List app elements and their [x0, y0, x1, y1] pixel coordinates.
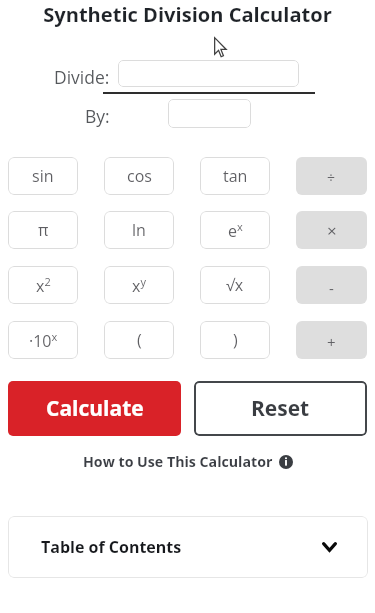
- button[interactable]: Table of Contents: [8, 516, 368, 578]
- button[interactable]: Reset: [194, 381, 367, 436]
- staticText: Divide:: [54, 65, 110, 89]
- staticText: π: [38, 219, 49, 241]
- button[interactable]: sin: [8, 157, 78, 195]
- button[interactable]: cos: [104, 157, 174, 195]
- staticText: Calculate: [46, 394, 144, 423]
- staticText: Table of Contents: [41, 536, 182, 558]
- button[interactable]: Dividend input: [118, 60, 299, 87]
- button[interactable]: Subtract: [296, 266, 367, 304]
- button[interactable]: π: [8, 211, 78, 249]
- button[interactable]: tan: [200, 157, 270, 195]
- staticText: cos: [127, 165, 152, 187]
- staticText: ·10x: [29, 329, 58, 351]
- staticText: tan: [223, 165, 248, 187]
- staticText: (: [137, 329, 142, 351]
- button[interactable]: (: [104, 321, 174, 359]
- button[interactable]: √x: [200, 266, 270, 304]
- staticText: √x: [226, 274, 244, 296]
- staticText: x2: [36, 274, 51, 296]
- button[interactable]: xy: [104, 266, 174, 304]
- button[interactable]: ): [200, 321, 270, 359]
- staticText: ): [233, 329, 238, 351]
- button[interactable]: Divisor input: [168, 99, 251, 128]
- staticText: +: [327, 332, 336, 352]
- button[interactable]: ln: [104, 211, 174, 249]
- staticText: ×: [327, 219, 337, 242]
- button[interactable]: ·10x: [8, 321, 78, 359]
- staticText: sin: [32, 165, 54, 187]
- staticText: Reset: [251, 394, 310, 423]
- button[interactable]: ex: [200, 211, 270, 249]
- staticText: ex: [228, 219, 243, 241]
- staticText: How to Use This Calculator: [83, 452, 273, 471]
- staticText: ln: [132, 219, 146, 241]
- button[interactable]: Calculate: [8, 381, 181, 436]
- button[interactable]: Add: [296, 321, 367, 359]
- staticText: xy: [132, 274, 146, 296]
- button[interactable]: How to Use This Calculator: [0, 452, 375, 471]
- staticText: -: [329, 278, 334, 298]
- staticText: By:: [85, 104, 110, 128]
- button[interactable]: Divide: [296, 157, 367, 195]
- button[interactable]: x2: [8, 266, 78, 304]
- button[interactable]: Multiply: [296, 211, 367, 249]
- staticText: ÷: [327, 168, 336, 187]
- staticText: Synthetic Division Calculator: [0, 1, 375, 28]
